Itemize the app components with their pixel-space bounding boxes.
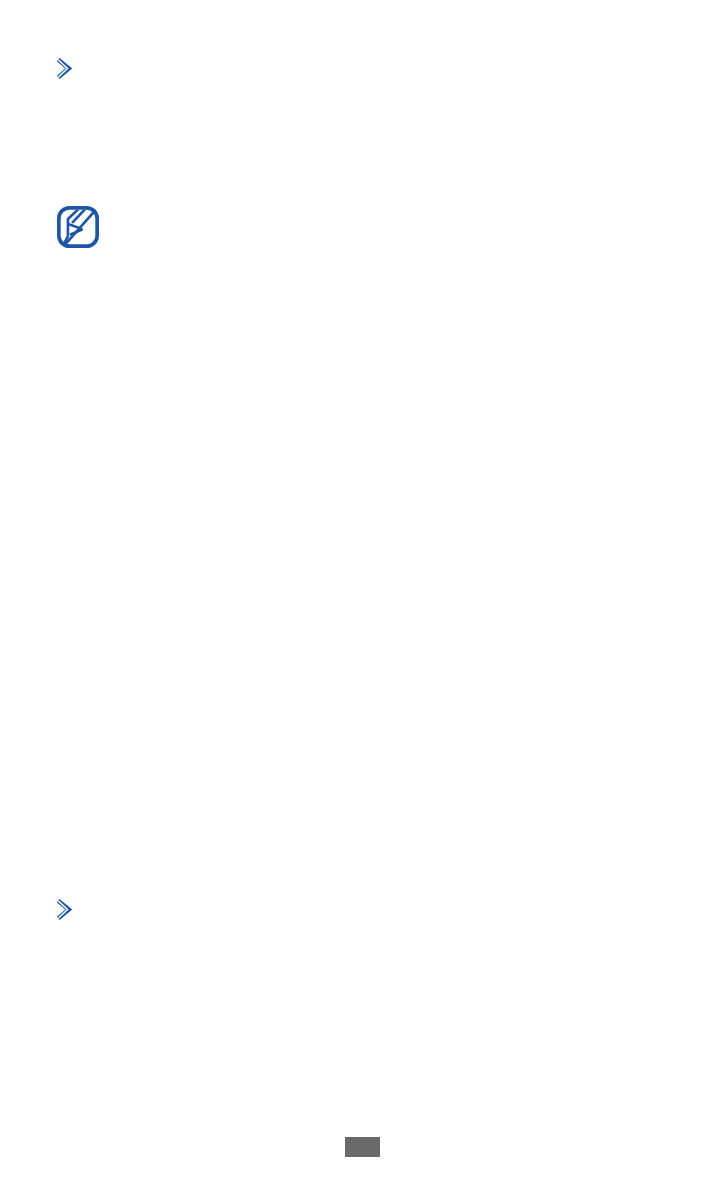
button[interactable]: Step xyxy=(56,58,71,79)
button[interactable]: Note xyxy=(57,206,99,248)
button[interactable]: Step xyxy=(56,899,71,920)
